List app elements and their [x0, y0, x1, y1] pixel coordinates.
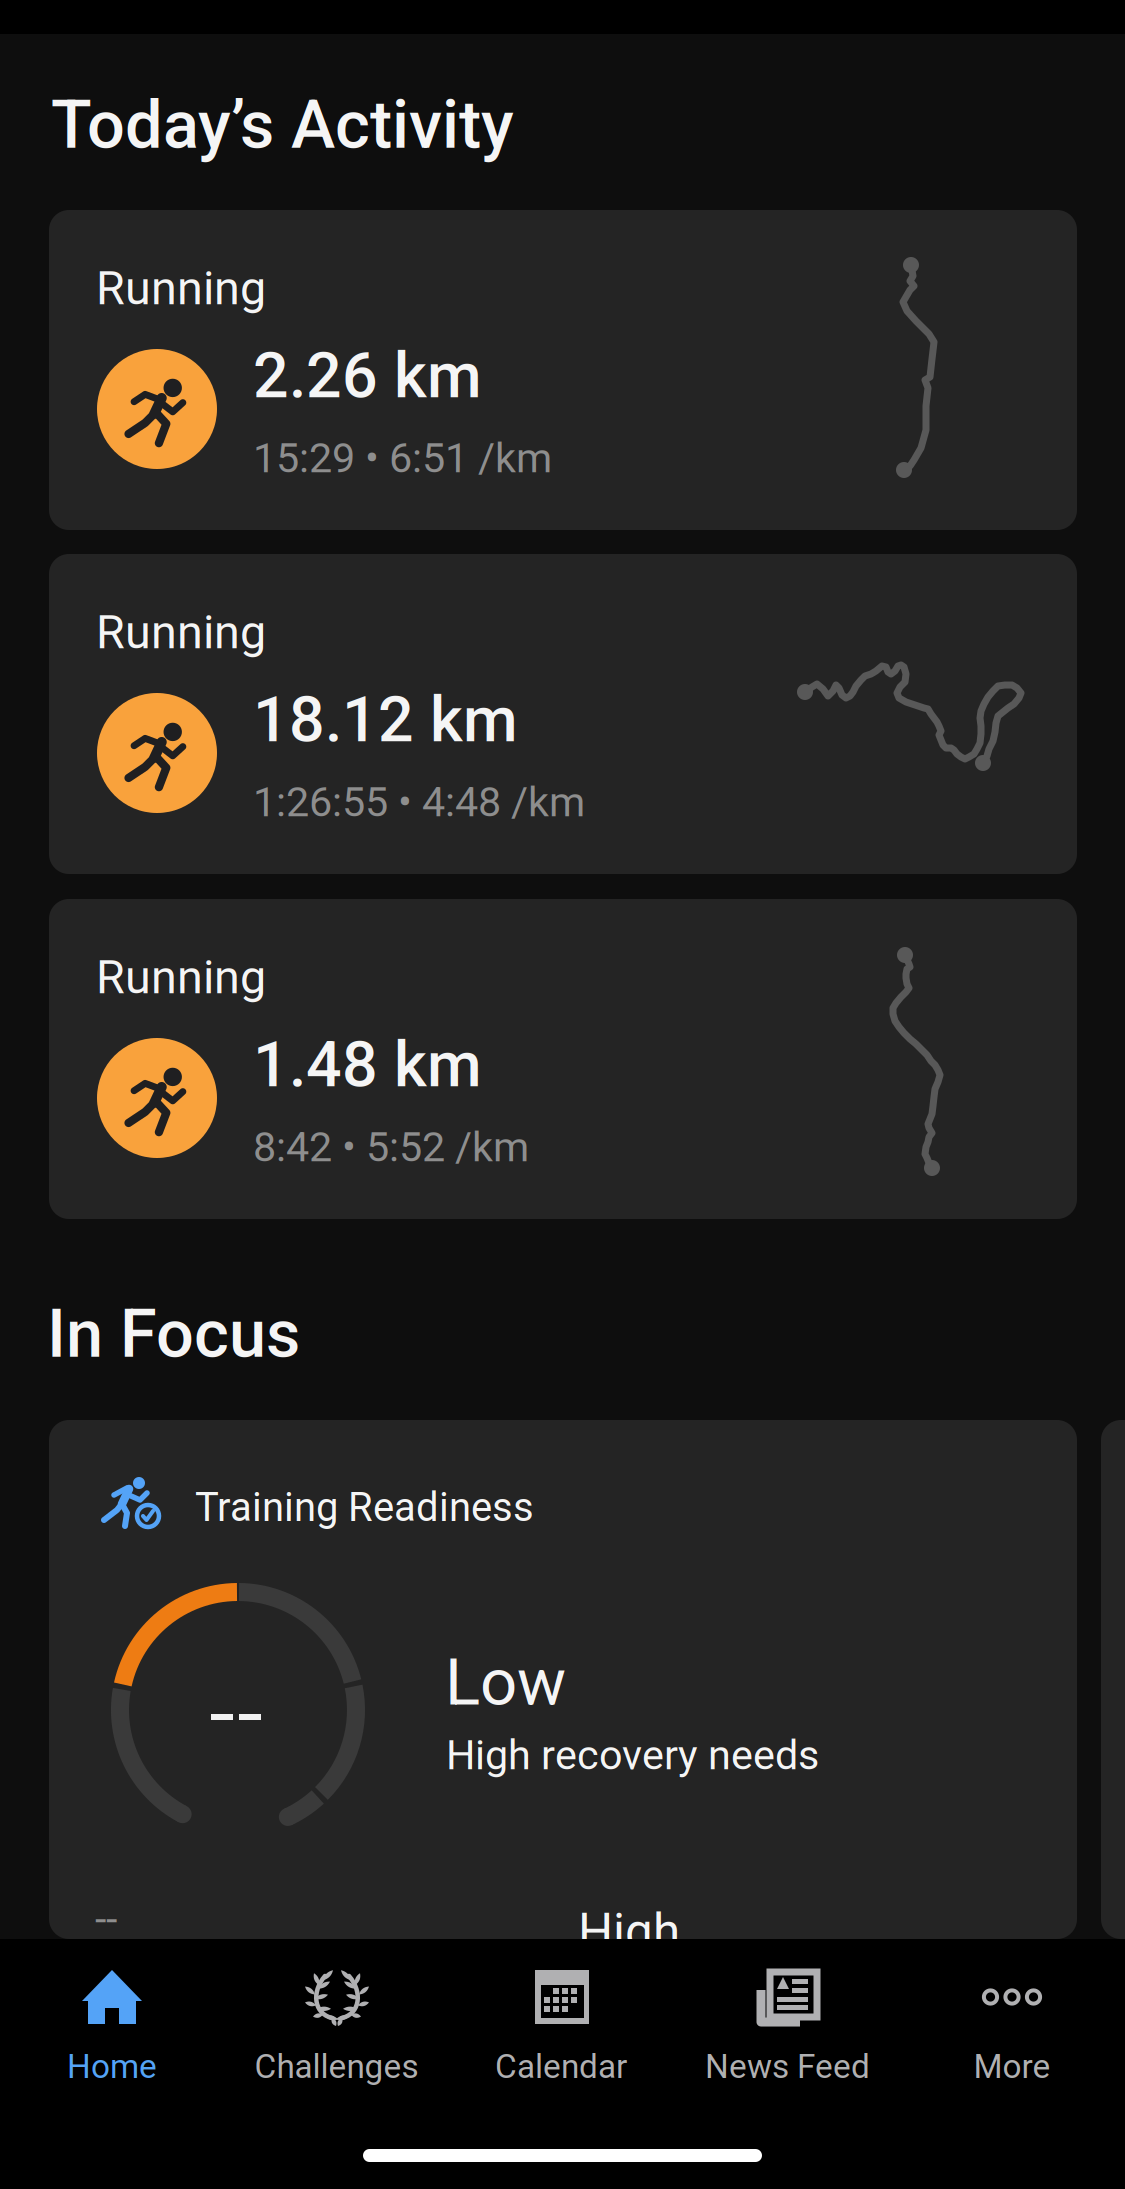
staticText: Challenges — [254, 2047, 418, 2086]
staticText: Running — [96, 261, 266, 316]
staticText: High recovery needs — [446, 1731, 819, 1779]
button[interactable]: Training Readiness, Low, high recovery n… — [49, 1420, 1077, 1939]
staticText: Training Readiness — [195, 1484, 534, 1531]
button[interactable]: News Feed — [675, 1955, 900, 2100]
staticText: More — [973, 2047, 1050, 2086]
staticText: Running — [96, 950, 266, 1005]
button[interactable]: Running, 1.48 km, 8:42 • 5:52 /km — [49, 899, 1077, 1219]
staticText: In Focus — [47, 1295, 300, 1373]
button[interactable]: Home — [0, 1955, 225, 2100]
button[interactable]: Calendar — [450, 1955, 675, 2100]
button[interactable]: Running, 18.12 km, 1:26:55 • 4:48 /km — [49, 554, 1077, 874]
button[interactable]: Challenges — [225, 1955, 450, 2100]
staticText: 15:29 • 6:51 /km — [253, 434, 552, 482]
staticText: Calendar — [495, 2047, 627, 2086]
staticText: Low — [445, 1644, 566, 1721]
staticText: Home — [67, 2047, 157, 2086]
staticText: -- — [95, 1895, 117, 1943]
staticText: Today’s Activity — [51, 86, 514, 164]
staticText: 8:42 • 5:52 /km — [253, 1123, 529, 1171]
staticText: High — [578, 1903, 680, 1961]
staticText: 2.26 km — [253, 339, 482, 412]
staticText: Running — [96, 605, 266, 660]
staticText: 18.12 km — [253, 683, 518, 756]
staticText: 1:26:55 • 4:48 /km — [253, 778, 585, 826]
button[interactable]: Running, 2.26 km, 15:29 • 6:51 /km — [49, 210, 1077, 530]
staticText: News Feed — [705, 2047, 870, 2086]
button[interactable]: More — [900, 1955, 1125, 2100]
staticText: 1.48 km — [253, 1028, 482, 1101]
